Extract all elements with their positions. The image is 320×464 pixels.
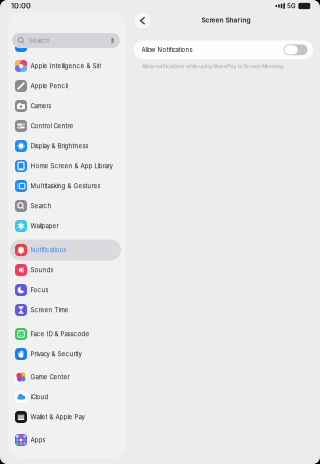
button[interactable]: Sounds [10, 259, 121, 280]
button[interactable]: iCloud [10, 386, 121, 407]
button[interactable]: Camera [10, 95, 121, 116]
staticText: Sounds [30, 266, 53, 274]
staticText: Search [29, 37, 50, 44]
button[interactable]: Wallpaper [10, 215, 121, 236]
staticText: Focus [30, 286, 48, 294]
staticText: Display & Brightness [30, 142, 88, 150]
button[interactable]: Privacy & Security [10, 343, 121, 364]
staticText: Control Centre [30, 122, 73, 130]
staticText: Wallpaper [30, 222, 58, 230]
button[interactable]: Back [134, 12, 151, 29]
staticText: Screen Sharing [201, 16, 250, 24]
button[interactable]: Screen Time [10, 299, 121, 320]
staticText: Allow Notifications [141, 46, 192, 53]
staticText: Screen Time [30, 306, 68, 314]
button[interactable]: Wallet & Apple Pay [10, 406, 121, 427]
staticText: Search [30, 202, 51, 210]
staticText: Home Screen & App Library [30, 162, 112, 170]
button[interactable]: Focus [10, 279, 121, 300]
staticText: Face ID & Passcode [30, 330, 89, 338]
button[interactable]: Apps [10, 429, 121, 450]
staticText: Multitasking & Gestures [30, 182, 100, 190]
staticText: 10:00 [11, 2, 31, 10]
button[interactable]: Display & Brightness [10, 135, 121, 156]
staticText: Notifications [30, 246, 66, 254]
button[interactable]: Face ID & Passcode [10, 323, 121, 344]
button[interactable]: Game Center [10, 366, 121, 387]
staticText: Apple Pencil [30, 82, 67, 90]
button[interactable]: Home Screen & App Library [10, 155, 121, 176]
button[interactable]: Search [10, 195, 121, 216]
button[interactable]: Apple Pencil [10, 75, 121, 96]
button[interactable]: Control Centre [10, 115, 121, 136]
staticText: Game Center [30, 373, 69, 381]
staticText: iCloud [30, 393, 48, 401]
staticText: Apps [30, 436, 45, 444]
staticText: Camera [30, 102, 51, 110]
staticText: Apple Intelligence & Siri [30, 62, 100, 70]
staticText: Wallet & Apple Pay [30, 413, 84, 421]
button[interactable]: Search [12, 33, 120, 48]
button[interactable]: Apple Intelligence & Siri [10, 55, 121, 76]
button[interactable]: Notifications [10, 239, 121, 260]
staticText: 5G [287, 2, 296, 10]
button[interactable]: Allow Notifications [134, 40, 313, 59]
staticText: Privacy & Security [30, 350, 81, 358]
staticText: Allow notifications while using SharePla… [142, 64, 284, 69]
button[interactable]: Multitasking & Gestures [10, 175, 121, 196]
